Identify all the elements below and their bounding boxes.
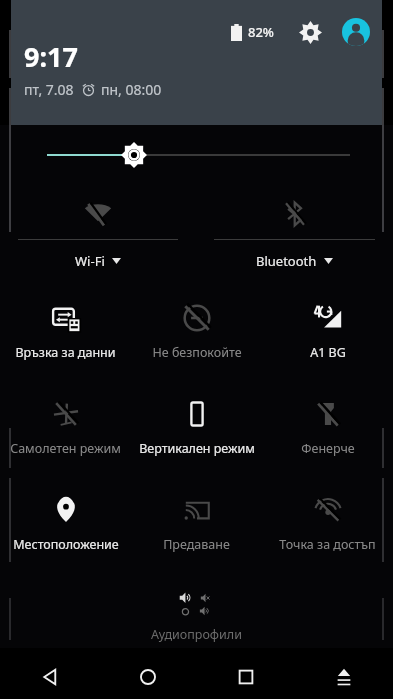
button[interactable]: Home: [99, 655, 197, 699]
staticText: 9:17: [24, 38, 78, 75]
staticText: пн, 08:00: [101, 80, 162, 99]
button[interactable]: Не безпокойте: [131, 290, 262, 386]
staticText: Точка за достъп: [279, 536, 376, 553]
button[interactable]: Hide navigation bar: [295, 655, 393, 699]
button[interactable]: Предаване: [131, 482, 262, 578]
button[interactable]: Wi-Fi: [0, 185, 196, 290]
staticText: Предаване: [163, 536, 230, 553]
button[interactable]: 9:17: [24, 38, 162, 99]
button[interactable]: A1 BG: [262, 290, 393, 386]
button[interactable]: Вертикален режим: [131, 386, 262, 482]
button[interactable]: Brightness: [0, 125, 393, 185]
button[interactable]: Точка за достъп: [262, 482, 393, 578]
button[interactable]: Bluetooth: [196, 185, 393, 290]
staticText: Аудиопрофили: [151, 626, 242, 643]
button[interactable]: Recents: [197, 655, 295, 699]
staticText: 82%: [248, 23, 274, 41]
staticText: пт, 7.08: [24, 80, 74, 99]
staticText: Фенерче: [301, 440, 355, 457]
button[interactable]: Аудиопрофили: [0, 578, 393, 648]
button[interactable]: Връзка за данни: [0, 290, 131, 386]
staticText: Самолетен режим: [10, 440, 121, 457]
staticText: A1 BG: [310, 344, 346, 361]
button[interactable]: Местоположение: [0, 482, 131, 578]
button[interactable]: Фенерче: [262, 386, 393, 482]
staticText: Wi-Fi: [75, 252, 105, 270]
staticText: Връзка за данни: [15, 344, 116, 361]
staticText: Не безпокойте: [152, 344, 242, 361]
button[interactable]: Back: [0, 655, 99, 699]
staticText: Вертикален режим: [139, 440, 255, 457]
button[interactable]: Самолетен режим: [0, 386, 131, 482]
staticText: Местоположение: [13, 536, 119, 553]
button[interactable]: Settings: [294, 16, 326, 48]
staticText: Bluetooth: [256, 252, 317, 270]
button[interactable]: User profile: [340, 16, 372, 48]
